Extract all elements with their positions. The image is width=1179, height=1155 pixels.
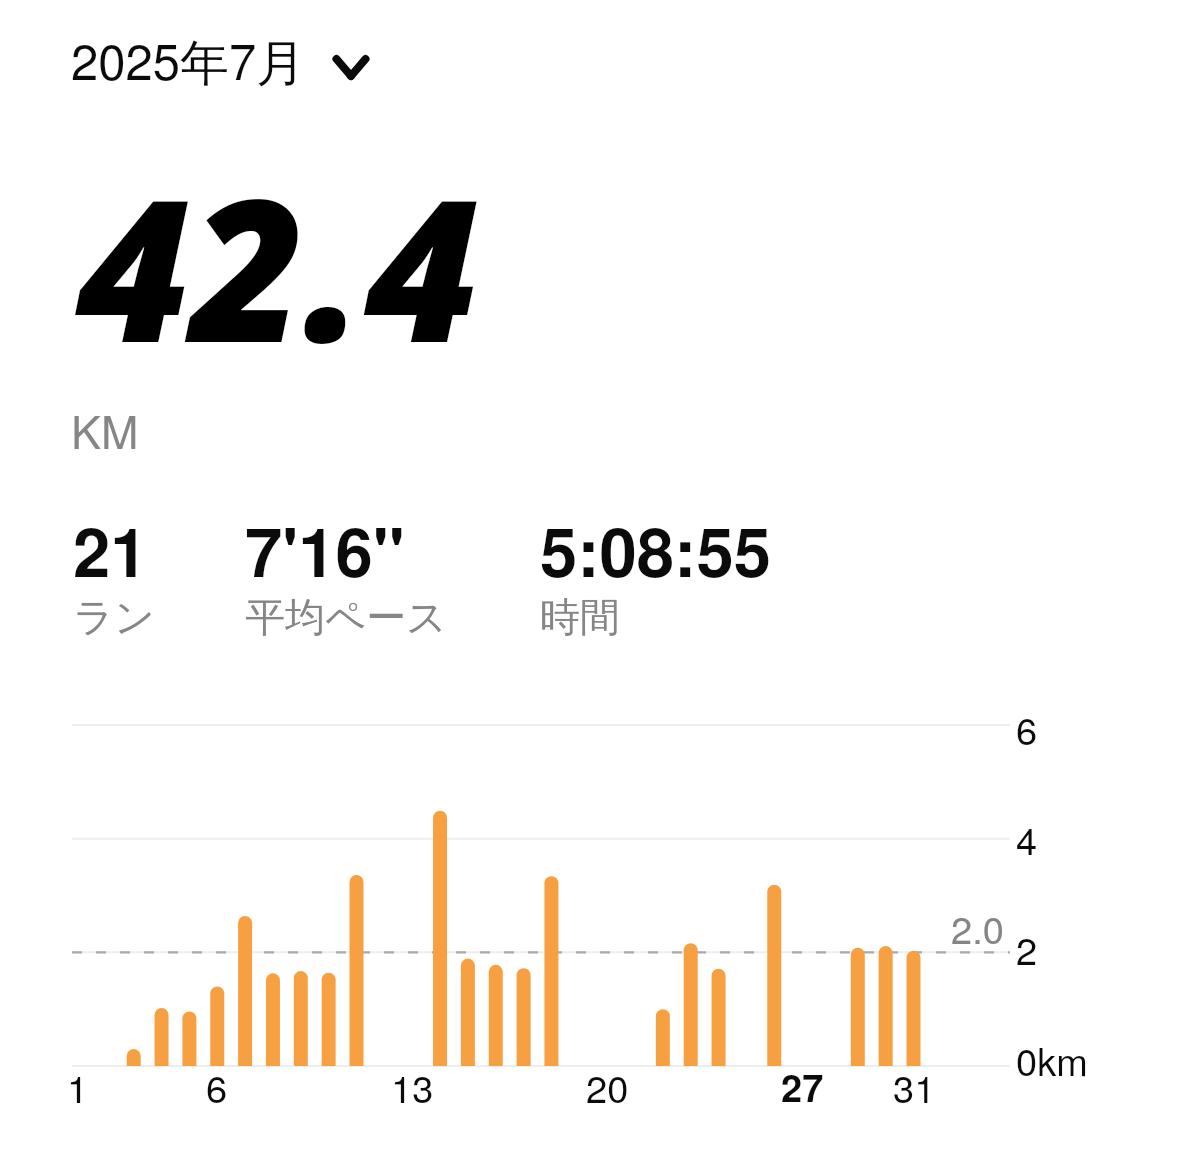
staticText: 平均ペース (245, 592, 447, 642)
staticText: 0km (1016, 1032, 1088, 1086)
staticText: 27 (781, 1059, 824, 1113)
staticText: KM (71, 397, 139, 461)
button[interactable]: 7'16'' (239, 512, 524, 640)
staticText: 6 (1016, 701, 1038, 755)
staticText: 1 (67, 1059, 89, 1113)
staticText: 2025年7月 (71, 24, 306, 95)
staticText: 2 (1016, 921, 1038, 975)
staticText: 42.4 (76, 131, 480, 399)
button[interactable]: 5:08:55 (534, 512, 774, 640)
staticText: 6 (206, 1059, 228, 1113)
staticText: 2.0 (951, 900, 1004, 954)
button[interactable]: 2025年7月 (57, 16, 388, 103)
staticText: ラン (73, 592, 155, 642)
staticText: 時間 (540, 592, 620, 642)
staticText: 20 (586, 1059, 629, 1113)
button[interactable]: 21 (67, 512, 232, 640)
staticText: 31 (893, 1059, 936, 1113)
button[interactable]: 42.4 (62, 116, 502, 466)
staticText: 5:08:55 (540, 502, 771, 598)
staticText: 21 (73, 502, 148, 598)
other: Change month (328, 37, 374, 83)
staticText: 4 (1016, 811, 1038, 865)
staticText: 13 (391, 1059, 434, 1113)
staticText: 7'16'' (245, 502, 405, 598)
